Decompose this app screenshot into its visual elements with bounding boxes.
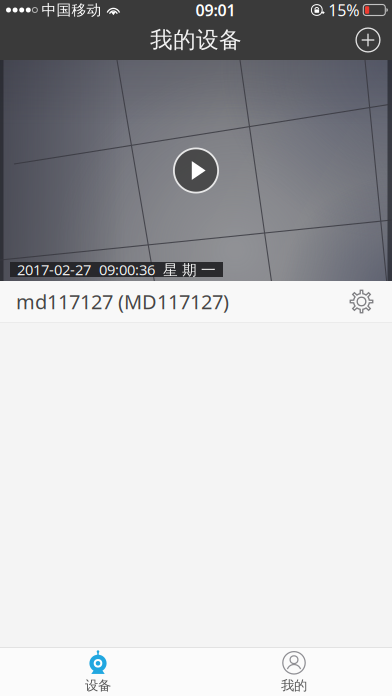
- button[interactable]: 设备: [0, 648, 196, 696]
- staticText: md117127 (MD117127): [16, 288, 229, 315]
- staticText: 设备: [85, 677, 111, 694]
- button[interactable]: 播放: [173, 147, 219, 193]
- staticText: 09:01: [196, 0, 236, 21]
- staticText: 我的: [281, 677, 307, 694]
- staticText: 2017-02-27 09:00:36 星 期 一: [17, 260, 216, 279]
- button[interactable]: md117127 (MD117127): [0, 281, 392, 322]
- staticText: 中国移动: [41, 1, 101, 19]
- staticText: 15%: [328, 0, 359, 21]
- button[interactable]: 添加设备: [344, 20, 392, 60]
- button[interactable]: 我的: [196, 648, 392, 696]
- staticText: 我的设备: [150, 26, 242, 54]
